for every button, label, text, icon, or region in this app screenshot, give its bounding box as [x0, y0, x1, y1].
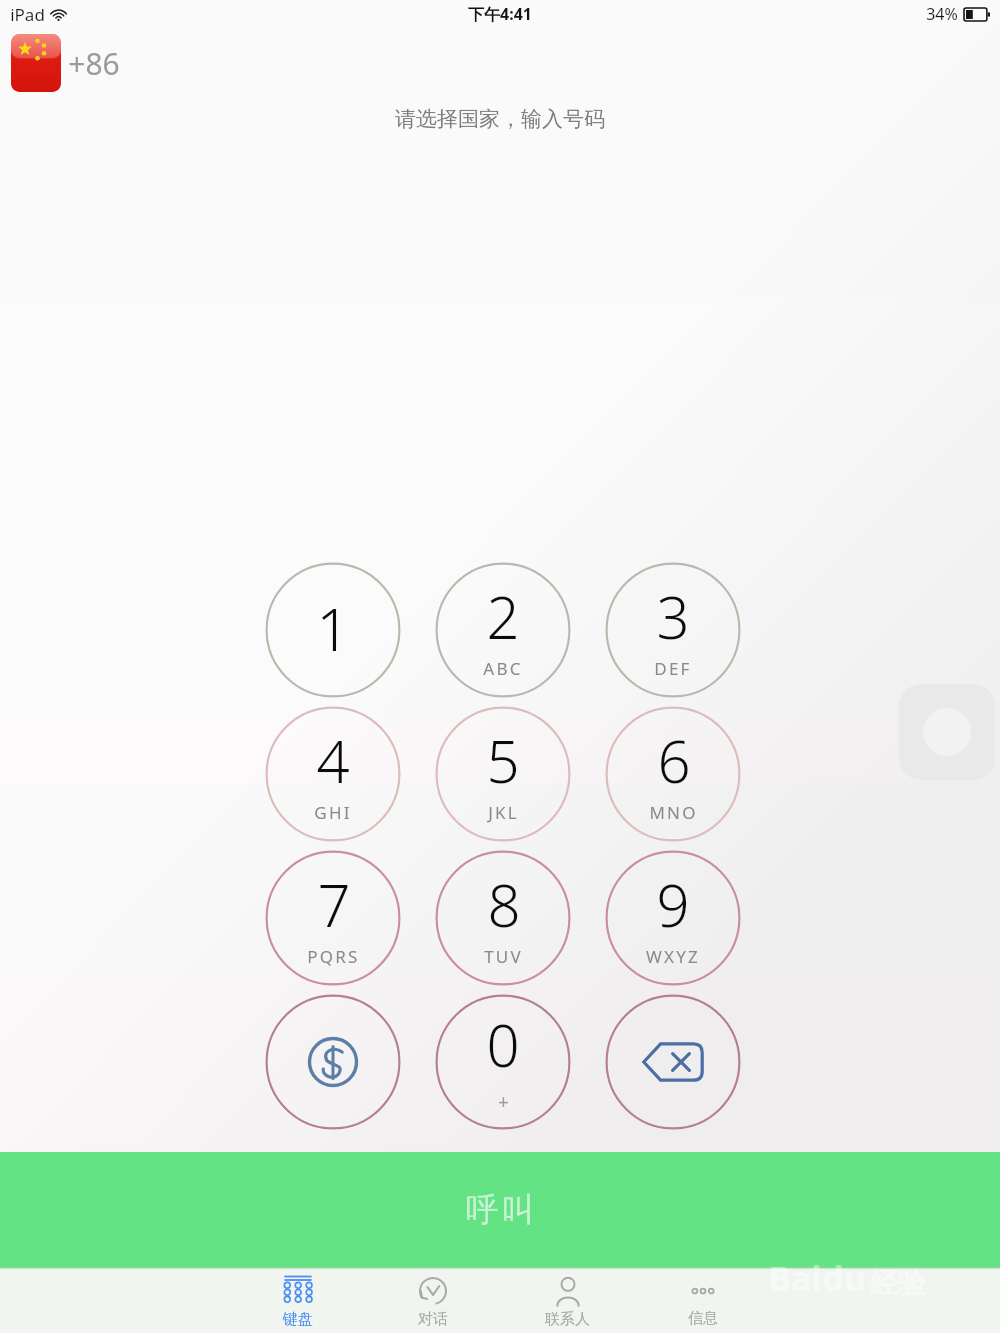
button[interactable]: 9	[605, 850, 741, 986]
button[interactable]: 对话	[365, 1271, 500, 1333]
staticText: 呼叫	[464, 1189, 536, 1231]
staticText: 联系人	[545, 1310, 590, 1329]
button[interactable]: +86	[11, 34, 120, 92]
button[interactable]: 呼叫	[0, 1152, 1000, 1267]
staticText: 经验	[870, 1266, 926, 1301]
staticText: +86	[68, 43, 120, 84]
staticText: 9	[656, 865, 690, 944]
staticText: Bai	[768, 1255, 822, 1301]
staticText: 5	[486, 721, 520, 800]
staticText: 1	[316, 589, 350, 668]
staticText: 34%	[926, 3, 958, 25]
button[interactable]: 信息	[635, 1271, 770, 1333]
staticText: 请选择国家，输入号码	[395, 106, 605, 132]
button[interactable]: 7	[265, 850, 401, 986]
staticText: DEF	[654, 657, 692, 680]
staticText: 信息	[688, 1309, 718, 1328]
staticText: GHI	[314, 801, 352, 824]
staticText: 键盘	[283, 1310, 313, 1329]
staticText: 0	[486, 1005, 520, 1084]
staticText: +	[498, 1089, 509, 1115]
staticText: ABC	[483, 657, 523, 680]
staticText: 4	[316, 721, 350, 800]
staticText: iPad	[10, 3, 45, 26]
button[interactable]: Pay	[265, 994, 401, 1130]
staticText: 3	[656, 577, 690, 656]
button[interactable]: 0	[435, 994, 571, 1130]
staticText: 2	[486, 577, 520, 656]
staticText: WXYZ	[646, 945, 700, 968]
button[interactable]: 3	[605, 562, 741, 698]
button[interactable]: 5	[435, 706, 571, 842]
button[interactable]: 6	[605, 706, 741, 842]
button[interactable]: 1	[265, 562, 401, 698]
staticText: TUV	[484, 945, 523, 968]
staticText: MNO	[649, 801, 698, 824]
staticText: PQRS	[307, 945, 360, 968]
button[interactable]: AssistiveTouch	[899, 684, 995, 780]
button[interactable]: Backspace	[605, 994, 741, 1130]
staticText: 下午4:41	[468, 3, 532, 25]
staticText: du	[822, 1255, 866, 1301]
staticText: 6	[657, 721, 691, 800]
button[interactable]: 8	[435, 850, 571, 986]
staticText: JKL	[488, 801, 519, 824]
button[interactable]: 2	[435, 562, 571, 698]
staticText: 7	[317, 865, 351, 944]
staticText: 对话	[418, 1310, 448, 1329]
staticText: 8	[487, 865, 521, 944]
button[interactable]: 键盘	[230, 1271, 365, 1333]
button[interactable]: 联系人	[500, 1271, 635, 1333]
button[interactable]: 4	[265, 706, 401, 842]
